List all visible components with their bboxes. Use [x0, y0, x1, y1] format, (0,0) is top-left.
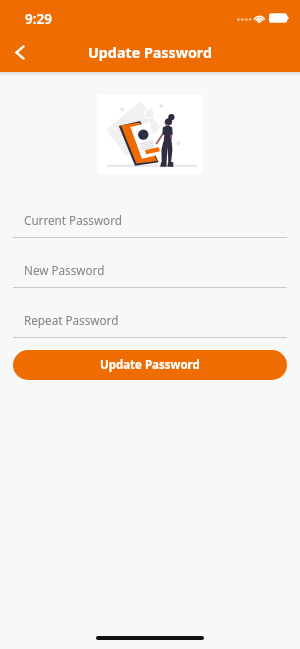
button[interactable]: Repeat Password	[13, 307, 287, 337]
staticText: Update Password	[100, 357, 200, 373]
staticText: Update Password	[88, 43, 213, 62]
button[interactable]: Current Password	[13, 207, 287, 237]
button[interactable]: New Password	[13, 257, 287, 287]
staticText: New Password	[24, 262, 105, 278]
staticText: Current Password	[24, 212, 122, 228]
staticText: 9:29	[25, 10, 52, 28]
staticText: Repeat Password	[24, 312, 119, 328]
button[interactable]: Back	[0, 32, 40, 72]
button[interactable]: Update Password	[13, 350, 287, 380]
